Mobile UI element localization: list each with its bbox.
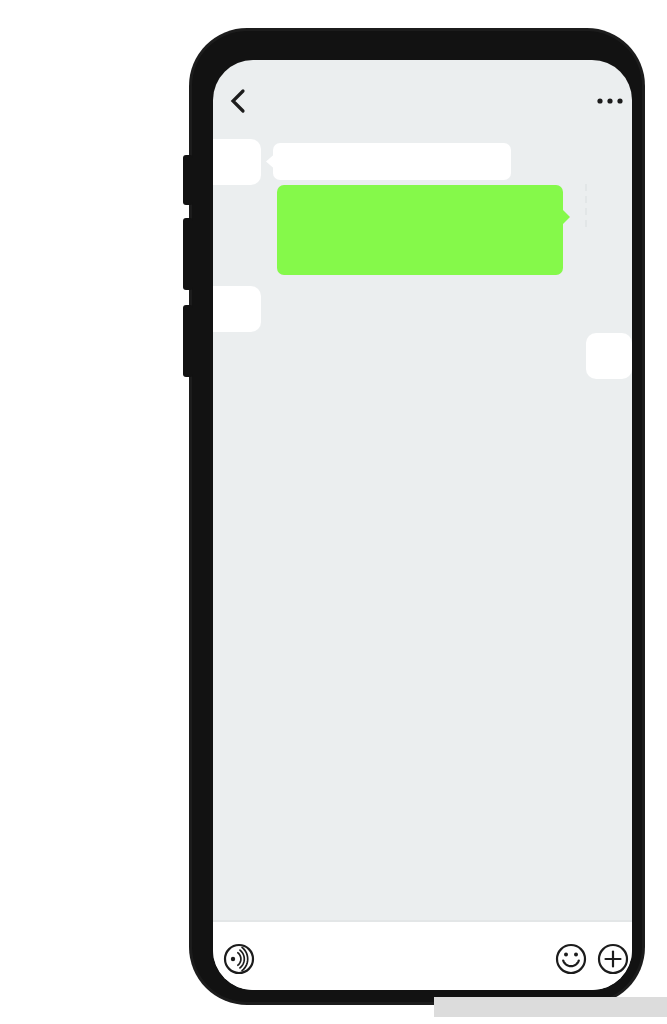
button[interactable]: Emoji xyxy=(556,944,587,975)
button[interactable]: My avatar xyxy=(586,333,632,379)
button[interactable]: Voice message xyxy=(222,940,260,978)
button[interactable]: Back xyxy=(222,86,258,120)
button[interactable]: Sent message xyxy=(277,185,563,275)
button[interactable]: More options xyxy=(588,88,628,116)
button[interactable]: More actions xyxy=(598,944,629,975)
